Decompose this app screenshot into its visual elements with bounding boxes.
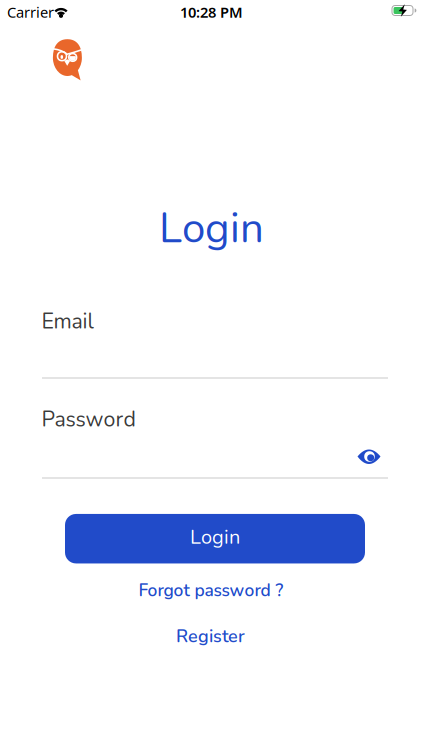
button[interactable]: Forgot password ? [138, 579, 283, 602]
button[interactable]: Login [65, 514, 365, 563]
button[interactable]: Email [42, 311, 388, 379]
staticText: Login [190, 524, 240, 551]
staticText: Email [41, 307, 93, 336]
staticText: Carrier [7, 2, 54, 22]
button[interactable]: Register [176, 624, 245, 649]
staticText: Forgot password ? [138, 579, 283, 602]
button[interactable]: Password [42, 411, 388, 479]
staticText: 10:28 PM [180, 2, 243, 22]
staticText: Login [159, 200, 264, 257]
staticText: Password [41, 405, 135, 434]
staticText: Register [176, 624, 245, 649]
button[interactable]: Show password [357, 449, 381, 465]
